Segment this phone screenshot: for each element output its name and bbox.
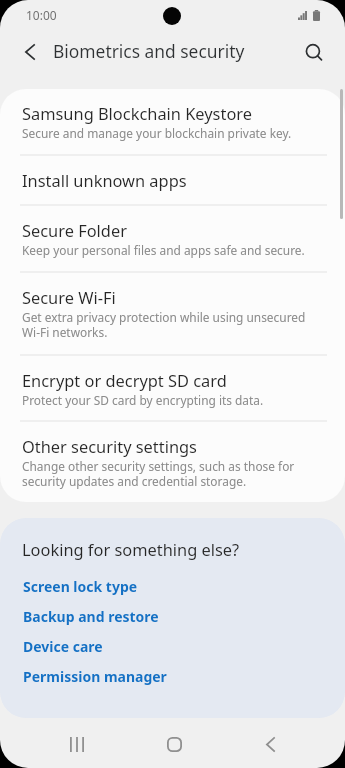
staticText: Samsung Blockchain Keystore (22, 102, 252, 124)
button[interactable]: Samsung Blockchain Keystore (0, 89, 345, 154)
staticText: Keep your personal files and apps safe a… (22, 242, 305, 258)
staticText: Screen lock type (23, 577, 138, 596)
staticText: Backup and restore (23, 607, 159, 626)
button[interactable]: Secure Wi-Fi (0, 273, 345, 354)
staticText: Other security settings (22, 435, 197, 457)
button[interactable]: Screen lock type (0, 571, 345, 601)
staticText: Device care (23, 637, 103, 656)
button[interactable]: Encrypt or decrypt SD card (0, 356, 345, 420)
button[interactable]: Backup and restore (0, 601, 345, 631)
button[interactable]: Other security settings (0, 422, 345, 501)
button[interactable]: Secure Folder (0, 206, 345, 271)
staticText: Permission manager (23, 667, 167, 686)
staticText: Protect your SD card by encrypting its d… (22, 392, 264, 408)
staticText: Change other security settings, such as … (22, 458, 325, 490)
staticText: Get extra privacy protection while using… (22, 309, 325, 341)
button[interactable]: Install unknown apps (0, 156, 345, 204)
button[interactable]: Back (246, 720, 294, 768)
staticText: 10:00 (26, 7, 57, 23)
button[interactable]: Home (150, 720, 198, 768)
staticText: Secure Folder (22, 219, 127, 241)
staticText: Install unknown apps (22, 169, 187, 191)
button[interactable]: Device care (0, 631, 345, 661)
button[interactable]: Recent apps (53, 720, 101, 768)
button[interactable]: Navigate up (12, 34, 48, 70)
staticText: Secure and manage your blockchain privat… (22, 125, 292, 141)
staticText: Biometrics and security (53, 39, 245, 63)
button[interactable]: Permission manager (0, 661, 345, 691)
staticText: Encrypt or decrypt SD card (22, 369, 227, 391)
button[interactable]: Search (296, 35, 332, 71)
staticText: Secure Wi-Fi (22, 286, 116, 308)
staticText: Looking for something else? (22, 538, 240, 560)
